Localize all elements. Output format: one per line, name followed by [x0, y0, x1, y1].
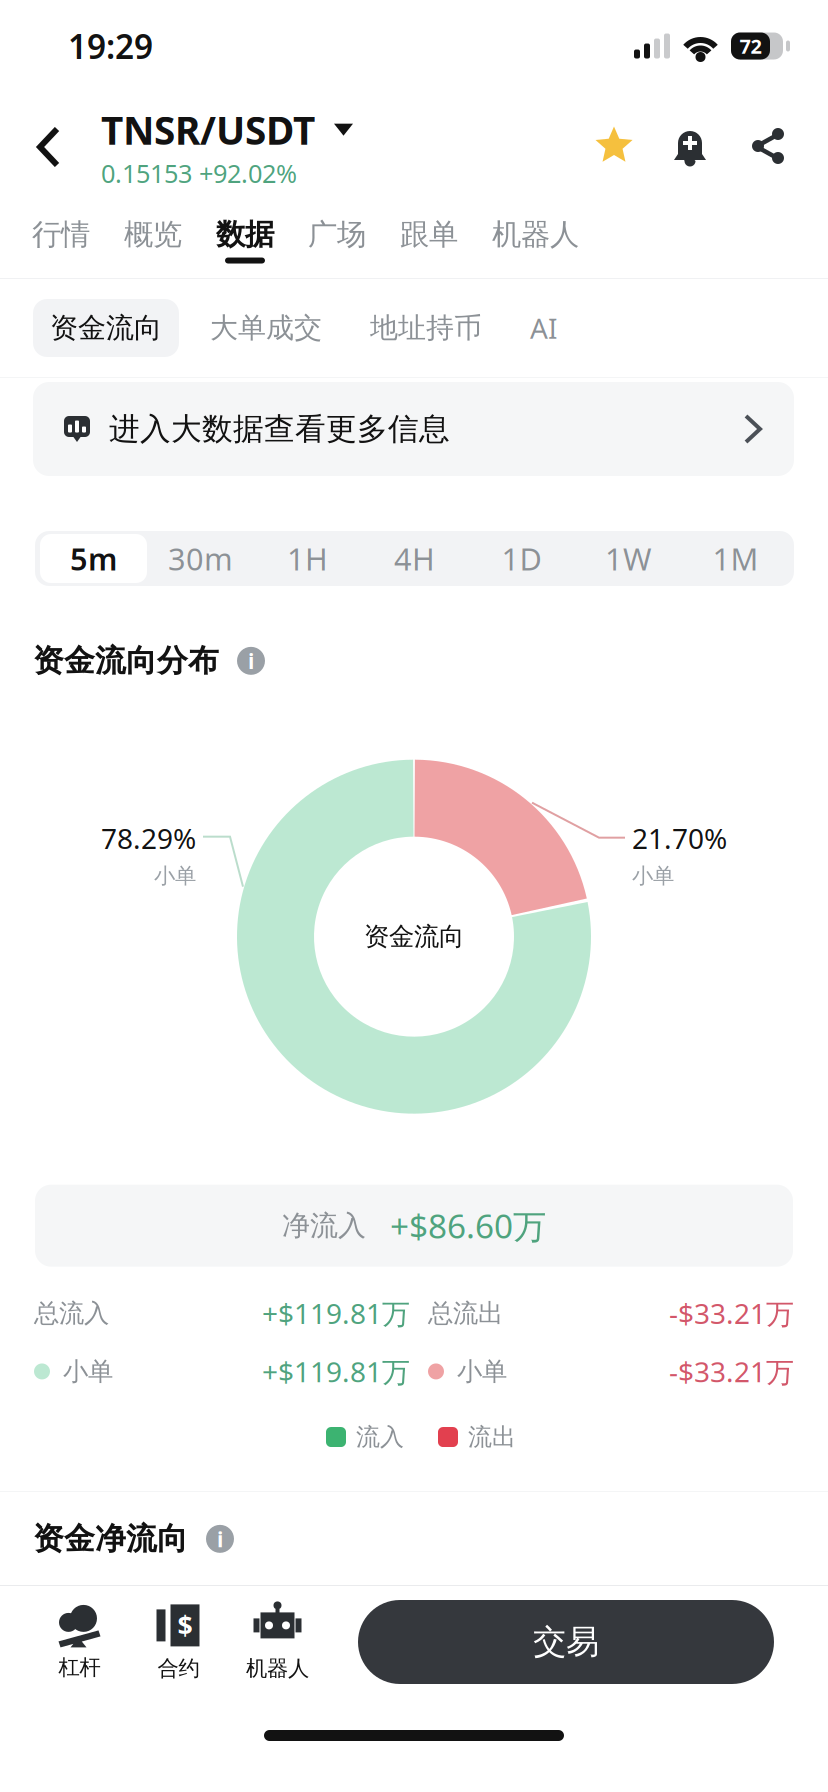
staticText: 广场: [308, 216, 366, 252]
staticText: 1D: [501, 538, 541, 579]
staticText: -$33.21万: [669, 1295, 794, 1332]
staticText: 资金净流向: [33, 1520, 188, 1558]
staticText: $: [177, 1608, 192, 1643]
button[interactable]: Price alert: [634, 127, 708, 167]
staticText: -$33.21万: [669, 1353, 794, 1390]
staticText: +$86.60万: [390, 1203, 546, 1248]
staticText: 流入: [356, 1422, 404, 1452]
staticText: +$119.81万: [262, 1295, 410, 1332]
button[interactable]: 进入大数据查看更多信息: [33, 382, 794, 476]
button[interactable]: 交易: [358, 1600, 774, 1684]
staticText: 小单: [63, 1356, 113, 1387]
staticText: 地址持币: [370, 311, 482, 345]
button[interactable]: 概览: [107, 202, 199, 278]
button[interactable]: 30m: [147, 534, 254, 583]
staticText: 机器人: [246, 1655, 309, 1682]
staticText: 净流入: [282, 1208, 366, 1243]
staticText: 合约: [157, 1655, 199, 1682]
staticText: 1H: [287, 538, 328, 579]
staticText: 19:29: [68, 24, 153, 68]
staticText: 1W: [605, 538, 652, 579]
staticText: 总流出: [428, 1298, 503, 1329]
staticText: 进入大数据查看更多信息: [109, 410, 450, 448]
staticText: 资金流向: [364, 921, 464, 952]
staticText: 78.29%: [101, 820, 196, 857]
button[interactable]: Favorite: [594, 127, 634, 167]
staticText: 跟单: [400, 216, 458, 252]
staticText: 流出: [468, 1422, 516, 1452]
button[interactable]: Share: [708, 127, 784, 167]
button[interactable]: 跟单: [383, 202, 475, 278]
staticText: +$119.81万: [262, 1353, 410, 1390]
staticText: 杠杆: [58, 1654, 100, 1681]
button[interactable]: $: [129, 1592, 228, 1692]
staticText: 行情: [32, 216, 90, 252]
staticText: 0.15153 +92.02%: [101, 156, 297, 190]
button[interactable]: Back: [0, 106, 101, 188]
staticText: 总流入: [34, 1298, 109, 1329]
button[interactable]: 行情: [15, 202, 107, 278]
staticText: 4H: [394, 538, 435, 579]
staticText: 30m: [168, 538, 233, 579]
staticText: 72: [739, 33, 761, 59]
button[interactable]: 杠杆: [30, 1592, 129, 1692]
button[interactable]: 数据: [199, 202, 291, 278]
button[interactable]: 机器人: [228, 1592, 327, 1692]
button[interactable]: AI: [513, 299, 588, 357]
button[interactable]: 广场: [291, 202, 383, 278]
button[interactable]: 机器人: [475, 202, 596, 278]
staticText: 小单: [457, 1356, 507, 1387]
button[interactable]: 5m: [40, 534, 147, 583]
button[interactable]: 大单成交: [193, 299, 353, 357]
staticText: 21.70%: [632, 820, 727, 857]
staticText: i: [248, 647, 254, 675]
button[interactable]: 1H: [254, 534, 361, 583]
staticText: 小单: [154, 863, 196, 889]
button[interactable]: 地址持币: [353, 299, 513, 357]
staticText: 机器人: [492, 216, 579, 252]
staticText: 资金流向分布: [33, 642, 219, 680]
button[interactable]: 资金流向: [33, 299, 193, 357]
staticText: AI: [530, 309, 557, 347]
button[interactable]: 1M: [682, 534, 789, 583]
staticText: 数据: [216, 216, 274, 252]
staticText: 小单: [632, 863, 674, 889]
staticText: 概览: [124, 216, 182, 252]
button[interactable]: 1W: [575, 534, 682, 583]
button[interactable]: 4H: [361, 534, 468, 583]
staticText: TNSR/USDT: [101, 104, 315, 155]
staticText: 资金流向: [50, 311, 162, 345]
staticText: 1M: [712, 538, 758, 579]
staticText: 大单成交: [210, 311, 322, 345]
button[interactable]: 1D: [468, 534, 575, 583]
staticText: 5m: [70, 538, 117, 579]
staticText: i: [217, 1525, 223, 1553]
staticText: 交易: [533, 1621, 599, 1662]
